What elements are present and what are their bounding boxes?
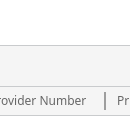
staticText: Price [117,92,130,108]
button[interactable]: Price [117,86,130,114]
staticText: Provider Number [0,92,87,108]
button[interactable]: Provider Number [0,86,87,114]
